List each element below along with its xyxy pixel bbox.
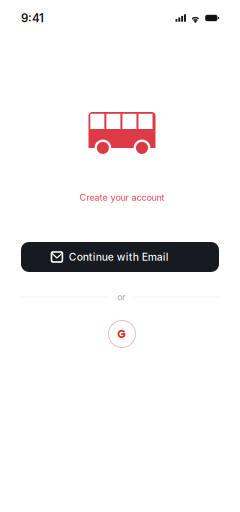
button[interactable]: Continue with Google (108, 320, 135, 347)
button[interactable]: Continue with Email (21, 242, 219, 272)
staticText: 9:41 (21, 11, 44, 25)
staticText: or (117, 292, 125, 302)
staticText: Continue with Email (69, 251, 169, 263)
staticText: Create your account (79, 192, 164, 203)
